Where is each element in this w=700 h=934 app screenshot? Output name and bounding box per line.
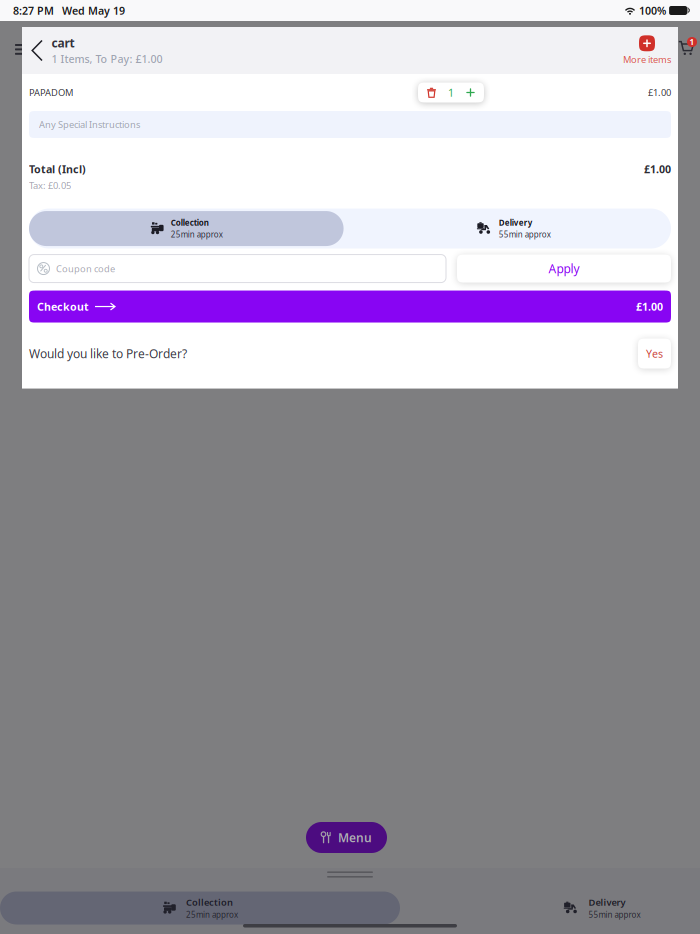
button[interactable]: More items (623, 27, 678, 74)
staticText: £1.00 (636, 299, 663, 314)
staticText: £1.00 (644, 162, 671, 176)
button[interactable]: Back (22, 27, 51, 74)
staticText: 100% (639, 3, 666, 18)
button[interactable]: Delivery (402, 891, 700, 924)
button[interactable]: Yes (638, 339, 671, 369)
button[interactable]: Menu (306, 822, 387, 853)
staticText: More items (623, 53, 671, 66)
staticText: Apply (548, 261, 579, 276)
staticText: Collection (171, 217, 209, 228)
staticText: 1 (448, 85, 454, 100)
button[interactable]: Open menu (15, 44, 27, 55)
staticText: Coupon code (56, 262, 115, 275)
staticText: cart (51, 35, 74, 51)
staticText: Delivery (588, 896, 625, 908)
staticText: Any Special Instructions (39, 118, 140, 131)
staticText: Total (Incl) (29, 162, 86, 176)
staticText: Checkout (37, 299, 89, 314)
button[interactable]: Delivery (356, 211, 671, 246)
staticText: Wed May 19 (62, 3, 125, 18)
staticText: Menu (338, 829, 372, 845)
button[interactable]: Apply (457, 255, 671, 283)
button[interactable]: Remove item (422, 83, 441, 101)
staticText: Delivery (499, 217, 533, 228)
staticText: Yes (646, 346, 663, 361)
button[interactable]: Checkout (29, 291, 671, 323)
staticText: Collection (186, 896, 233, 908)
staticText: PAPADOM (29, 86, 73, 99)
staticText: 8:27 PM (13, 3, 54, 18)
staticText: 25min approx (171, 229, 223, 240)
staticText: Would you like to Pre-Order? (29, 346, 187, 361)
button[interactable]: Collection (29, 211, 344, 246)
staticText: £1.00 (648, 86, 671, 99)
button[interactable]: Collection (0, 891, 400, 924)
staticText: 55min approx (499, 229, 551, 240)
button[interactable]: Add one (461, 83, 480, 101)
staticText: Tax: £0.05 (29, 179, 71, 192)
staticText: 1 Items, To Pay: £1.00 (51, 52, 162, 66)
staticText: 1 (689, 37, 694, 47)
staticText: 25min approx (186, 909, 238, 920)
staticText: 55min approx (588, 909, 640, 920)
